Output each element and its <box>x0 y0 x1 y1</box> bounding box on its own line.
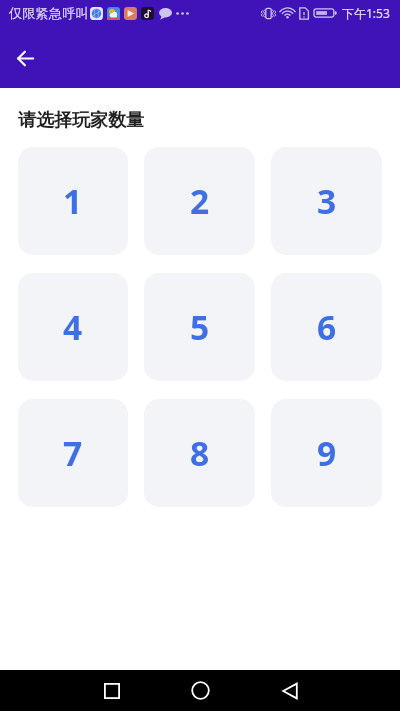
staticText: 3 <box>317 178 337 224</box>
staticText: 请选择玩家数量 <box>18 109 144 132</box>
staticText: 7 <box>63 430 83 476</box>
button[interactable]: Recents <box>67 670 156 711</box>
button[interactable]: 8 <box>144 399 255 507</box>
button[interactable]: 4 <box>18 273 128 381</box>
staticText: 9 <box>317 430 337 476</box>
staticText: 5 <box>190 304 210 350</box>
button[interactable]: 5 <box>144 273 255 381</box>
staticText: 1 <box>63 178 83 224</box>
button[interactable]: 1 <box>18 147 128 255</box>
button[interactable]: 6 <box>271 273 382 381</box>
staticText: 6 <box>317 304 337 350</box>
button[interactable]: Home <box>156 670 245 711</box>
button[interactable]: Back <box>245 670 334 711</box>
button[interactable]: 2 <box>144 147 255 255</box>
button[interactable]: 9 <box>271 399 382 507</box>
button[interactable]: 3 <box>271 147 382 255</box>
staticText: 2 <box>190 178 210 224</box>
staticText: 仅限紧急呼叫 <box>9 5 89 22</box>
button[interactable]: 7 <box>18 399 128 507</box>
button[interactable]: Back <box>3 36 47 80</box>
staticText: 4 <box>63 304 83 350</box>
staticText: 下午1:53 <box>342 5 390 21</box>
staticText: 8 <box>190 430 210 476</box>
